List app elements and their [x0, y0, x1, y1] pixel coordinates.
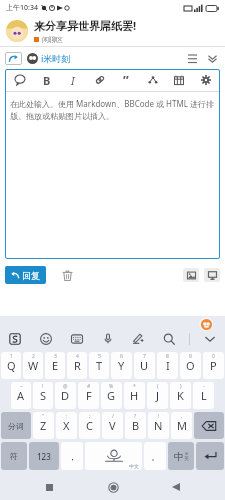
button[interactable]: ~ [11, 382, 31, 409]
button[interactable]: 6 [111, 352, 132, 379]
staticText: H [130, 388, 139, 403]
staticText: I [71, 73, 75, 88]
button[interactable]: Code [141, 70, 164, 90]
button[interactable]: 。 [144, 442, 166, 470]
button[interactable]: Hide keyboard [199, 329, 221, 349]
button[interactable]: 7 [134, 352, 155, 379]
button[interactable]: # [78, 382, 99, 409]
button[interactable]: Bold [35, 70, 58, 90]
staticText: D [61, 388, 70, 403]
button[interactable]: Back [161, 474, 191, 500]
staticText: 符 [10, 451, 18, 461]
button[interactable]: Assistant [199, 317, 213, 331]
button[interactable]: 123 [29, 442, 59, 470]
button[interactable]: Quote [114, 70, 137, 90]
button[interactable]: Italic [61, 70, 84, 90]
button[interactable]: Reply arrow [5, 52, 22, 65]
button[interactable]: Enter [196, 442, 224, 470]
button[interactable]: 符 [1, 442, 27, 470]
button[interactable]: 4 [67, 352, 87, 379]
staticText: 中 [174, 450, 184, 463]
button[interactable]: 回复 [5, 266, 46, 284]
button[interactable]: " [33, 412, 54, 439]
button[interactable]: Menu [184, 50, 200, 66]
staticText: R [74, 358, 81, 373]
button[interactable]: ! [33, 382, 53, 409]
button[interactable]: Insert image [183, 268, 199, 282]
staticText: V [109, 418, 116, 433]
button[interactable]: Delete [58, 266, 76, 284]
staticText: 5 [98, 353, 101, 360]
staticText: T [96, 358, 103, 373]
staticText: ) [180, 383, 182, 390]
button[interactable]: Collapse [204, 50, 220, 66]
staticText: 0 [212, 353, 215, 360]
staticText: Z [40, 418, 47, 433]
button[interactable]: Voice [97, 329, 119, 349]
button[interactable]: 8 [157, 352, 178, 379]
button[interactable]: / [102, 412, 123, 439]
staticText: ? [134, 413, 137, 420]
staticText: G [107, 388, 116, 403]
button[interactable]: * [124, 382, 145, 409]
staticText: C [86, 418, 93, 433]
button[interactable]: Keyboard [66, 329, 88, 349]
button[interactable]: 来分享异世界屌纸罢! [0, 16, 225, 46]
button[interactable]: 分词 [1, 412, 31, 439]
button[interactable]: Search [158, 329, 180, 349]
staticText: N [154, 418, 163, 433]
staticText: * [133, 383, 136, 390]
staticText: 中文 [129, 463, 139, 469]
button[interactable]: Link [88, 70, 111, 90]
button[interactable]: ) [170, 382, 191, 409]
button[interactable]: Input method [4, 329, 26, 349]
button[interactable]: ( [147, 382, 168, 409]
button[interactable]: ! [148, 412, 169, 439]
staticText: W [28, 358, 39, 373]
staticText: X [63, 418, 70, 433]
button[interactable]: 0 [203, 352, 224, 379]
button[interactable]: % [101, 382, 122, 409]
button[interactable]: : [56, 412, 77, 439]
button[interactable]: 5 [89, 352, 109, 379]
staticText: K [177, 388, 184, 403]
button[interactable]: ; [79, 412, 100, 439]
staticText: 闲聊区 [42, 35, 63, 44]
button[interactable]: Preview [204, 268, 220, 282]
staticText: Y [118, 358, 125, 373]
staticText: , [181, 413, 183, 420]
staticText: U [140, 358, 149, 373]
button[interactable]: Recents [34, 474, 64, 500]
button[interactable]: - [193, 382, 214, 409]
staticText: 8 [166, 353, 169, 360]
staticText: ~ [20, 383, 23, 390]
button[interactable]: Handwriting [127, 329, 149, 349]
button[interactable]: 中 [168, 442, 194, 470]
button[interactable]: Home [98, 474, 128, 500]
staticText: O [186, 358, 195, 373]
button[interactable]: Emoji [35, 329, 57, 349]
button[interactable]: Settings [194, 70, 217, 90]
button[interactable]: ， [61, 442, 83, 470]
button[interactable]: Emoji [8, 70, 31, 90]
button[interactable]: @ [55, 382, 76, 409]
button[interactable]: Table [167, 70, 190, 90]
staticText: 来分享异世界屌纸罢! [34, 18, 137, 33]
button[interactable]: Backspace [194, 412, 224, 439]
staticText: 英 [184, 455, 189, 461]
button[interactable]: Space [85, 442, 142, 470]
button[interactable]: 2 [23, 352, 43, 379]
button[interactable]: 3 [45, 352, 65, 379]
button[interactable]: ? [125, 412, 146, 439]
staticText: i米时刻 [41, 52, 71, 64]
staticText: 123 [37, 451, 51, 462]
button[interactable]: , [171, 412, 192, 439]
staticText: F [86, 388, 92, 403]
staticText: ! [158, 413, 160, 420]
staticText: L [201, 388, 207, 403]
button[interactable]: 9 [180, 352, 201, 379]
button[interactable]: 1 [1, 352, 21, 379]
staticText: @ [63, 383, 68, 390]
staticText: / [112, 413, 114, 420]
staticText: B [43, 73, 51, 88]
